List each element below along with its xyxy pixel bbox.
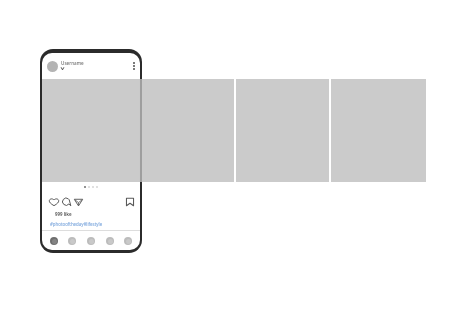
button[interactable]: Tab 2	[65, 234, 79, 248]
button[interactable]: Tab 4	[103, 234, 117, 248]
button[interactable]: Share	[74, 198, 83, 206]
button[interactable]: Tab 3	[84, 234, 98, 248]
button[interactable]: Tab 1	[47, 234, 61, 248]
button[interactable]: Save	[126, 198, 134, 206]
button[interactable]: More options	[131, 60, 137, 72]
staticText: 999 like	[55, 211, 72, 217]
button[interactable]: #photooftheday#lifestyle	[50, 221, 103, 227]
button[interactable]: Like	[49, 198, 59, 206]
staticText: Username	[61, 60, 84, 66]
button[interactable]: Comment	[62, 198, 71, 206]
button[interactable]: Tab 5	[121, 234, 135, 248]
